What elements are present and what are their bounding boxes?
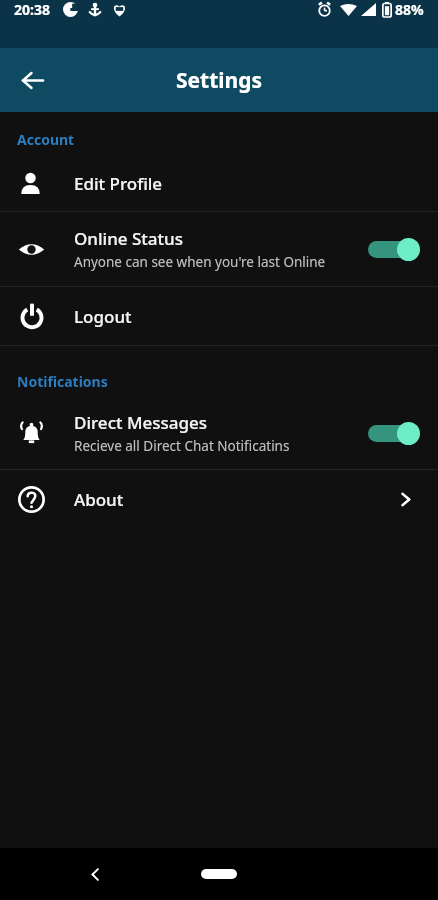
button[interactable]: Direct Messages bbox=[0, 397, 438, 469]
staticText: Direct Messages bbox=[74, 411, 208, 434]
staticText: 20:38 bbox=[14, 0, 50, 19]
button[interactable]: Logout bbox=[0, 287, 438, 345]
staticText: Logout bbox=[74, 305, 132, 328]
button[interactable]: Home bbox=[188, 861, 250, 887]
button[interactable]: Back bbox=[75, 854, 115, 894]
staticText: Edit Profile bbox=[74, 172, 163, 195]
staticText: Recieve all Direct Chat Notificatins bbox=[74, 437, 290, 455]
button[interactable]: Online Status bbox=[0, 212, 438, 286]
button[interactable]: Back bbox=[8, 56, 56, 104]
button[interactable]: Open About bbox=[390, 484, 420, 514]
staticText: About bbox=[74, 488, 124, 511]
staticText: 88% bbox=[395, 0, 424, 19]
staticText: Settings bbox=[176, 66, 263, 95]
button[interactable]: Edit Profile bbox=[0, 155, 438, 211]
staticText: Account bbox=[17, 130, 75, 149]
button[interactable]: Toggle bbox=[368, 232, 420, 266]
staticText: Anyone can see when you're last Online bbox=[74, 253, 326, 271]
staticText: Notifications bbox=[17, 372, 108, 391]
button[interactable]: Toggle bbox=[368, 416, 420, 450]
staticText: Online Status bbox=[74, 227, 184, 250]
button[interactable]: About bbox=[0, 470, 438, 528]
